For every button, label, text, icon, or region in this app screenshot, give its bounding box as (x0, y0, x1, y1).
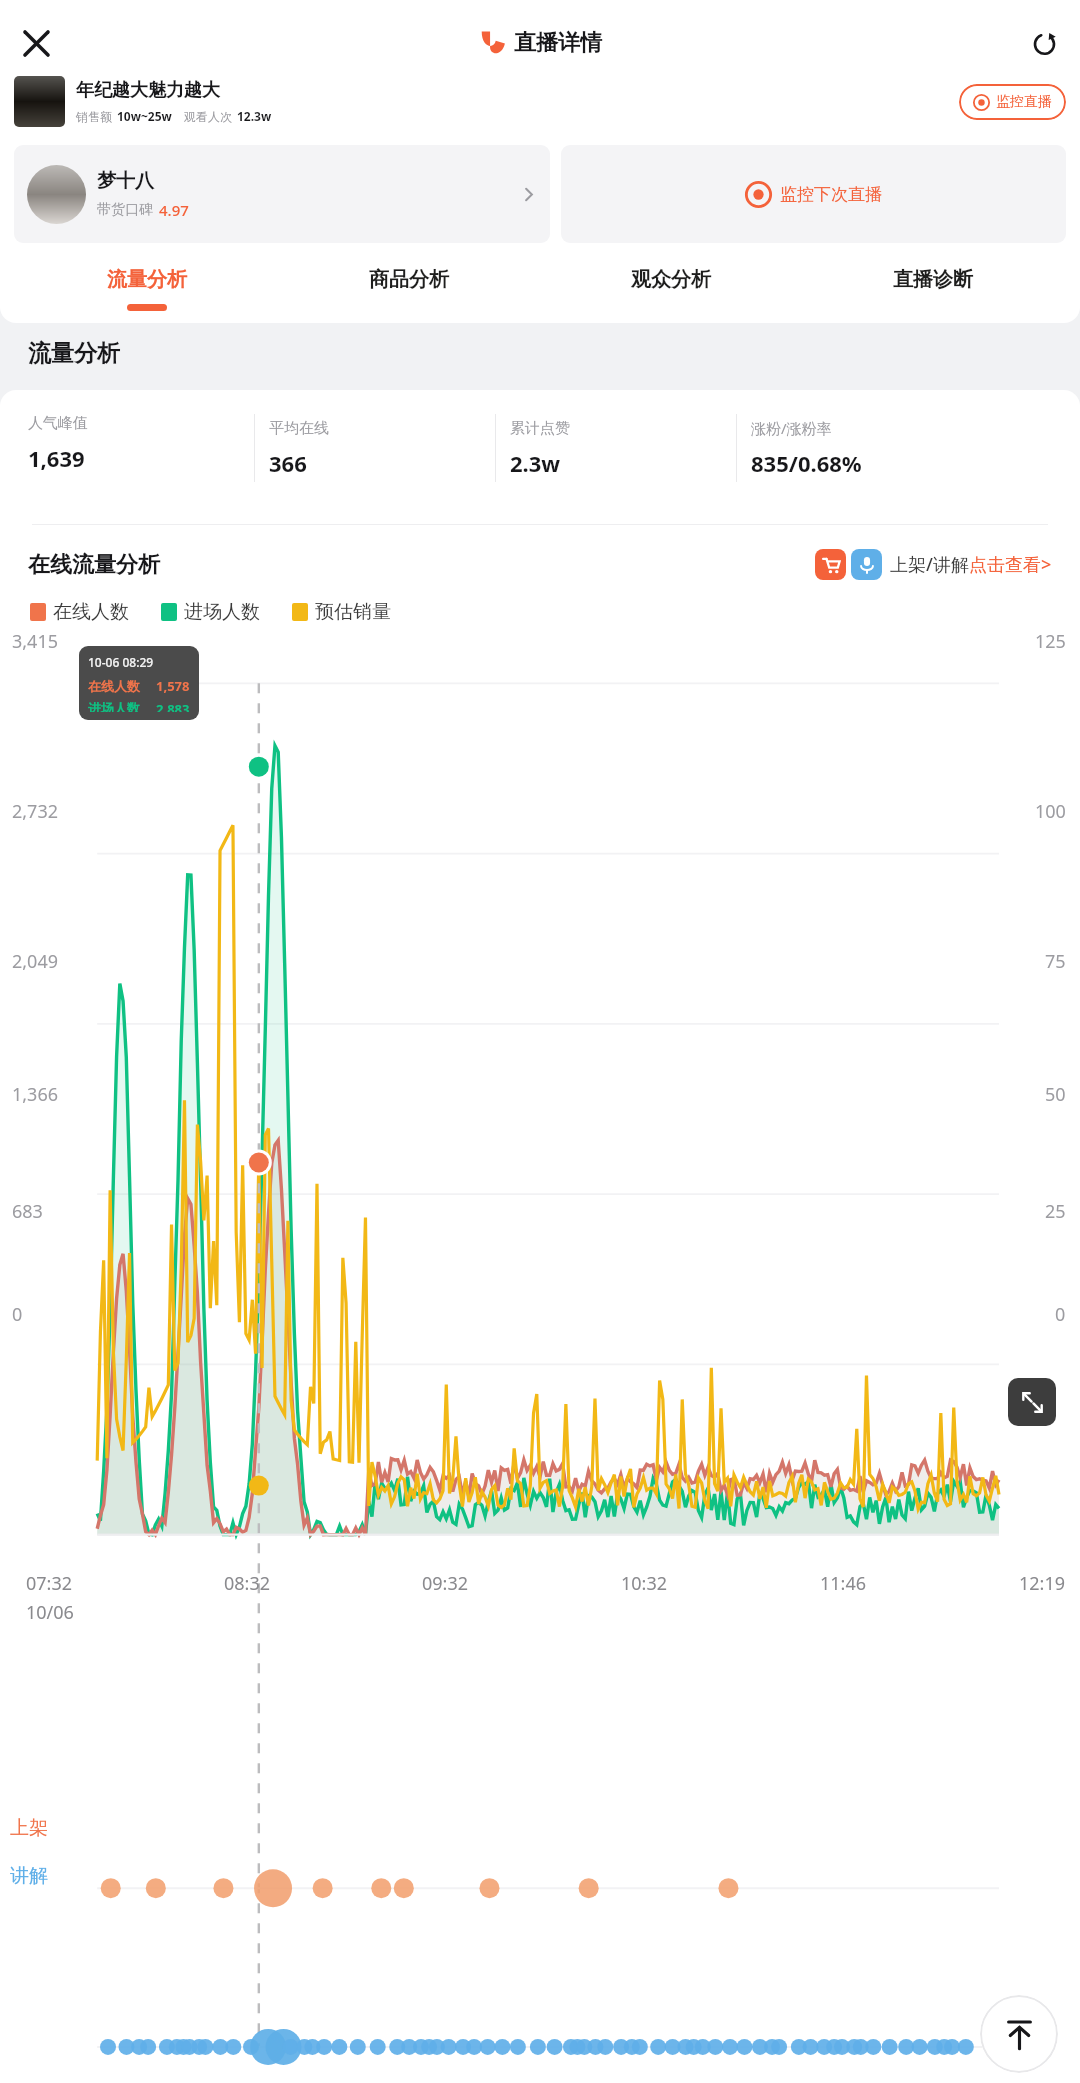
staticText: 125 (1035, 629, 1066, 654)
staticText: 商品分析 (369, 267, 449, 292)
button[interactable]: 流量分析 (16, 267, 278, 311)
staticText: 梦十八 (97, 169, 154, 193)
staticText: 监控下次直播 (780, 184, 882, 205)
staticText: 流量分析 (107, 267, 187, 292)
staticText: 10-06 08:29 (88, 654, 154, 670)
staticText: 2,883 (156, 700, 190, 712)
button[interactable]: 进场人数 (161, 600, 260, 624)
staticText: 2,732 (12, 799, 59, 824)
staticText: 涨粉/涨粉率 (751, 418, 832, 438)
staticText: 上架 (10, 1816, 48, 1840)
staticText: 4.97 (159, 200, 189, 220)
staticText: 2,049 (12, 949, 59, 974)
button[interactable]: 监控下次直播 (561, 145, 1066, 243)
staticText: 人气峰值 (28, 414, 88, 433)
staticText: 835/0.68% (751, 448, 862, 478)
staticText: 累计点赞 (510, 419, 570, 438)
staticText: 点击查看> (969, 552, 1052, 577)
button[interactable]: Scroll to top (980, 1995, 1058, 2073)
button[interactable]: Refresh (1020, 19, 1068, 67)
button[interactable]: 预估销量 (292, 600, 391, 624)
staticText: 12:19 (1019, 1571, 1066, 1596)
staticText: 09:32 (422, 1571, 469, 1596)
staticText: 25 (1045, 1199, 1066, 1224)
staticText: 观看人次 (184, 109, 232, 124)
staticText: 100 (1035, 799, 1066, 824)
button[interactable]: 在线人数 (30, 600, 129, 624)
staticText: 08:32 (224, 1571, 271, 1596)
button[interactable]: 直播诊断 (802, 267, 1064, 311)
staticText: 监控直播 (996, 93, 1052, 111)
staticText: 10/06 (26, 1600, 74, 1625)
button[interactable]: 监控直播 (959, 84, 1066, 120)
staticText: 1,639 (28, 443, 85, 473)
staticText: 10w~25w (117, 108, 172, 124)
staticText: 1,366 (12, 1082, 59, 1107)
staticText: 销售额 (76, 109, 112, 124)
staticText: 直播详情 (514, 29, 602, 57)
staticText: 在线人数 (53, 600, 129, 624)
staticText: 10:32 (621, 1571, 668, 1596)
staticText: 12.3w (237, 108, 272, 124)
staticText: 进场人数 (88, 700, 140, 712)
staticText: 1,578 (156, 677, 190, 695)
button[interactable]: 观众分析 (540, 267, 802, 311)
staticText: 50 (1045, 1082, 1066, 1107)
staticText: 预估销量 (315, 600, 391, 624)
staticText: 2.3w (510, 448, 561, 478)
staticText: 683 (12, 1199, 43, 1224)
staticText: 3,415 (12, 629, 59, 654)
staticText: 07:32 (26, 1571, 73, 1596)
button[interactable]: 梦十八 (14, 145, 550, 243)
staticText: 观众分析 (631, 267, 711, 292)
staticText: 在线人数 (88, 678, 140, 694)
button[interactable]: Close (10, 17, 62, 69)
staticText: 11:46 (820, 1571, 867, 1596)
button[interactable]: Expand chart (1008, 1378, 1056, 1426)
button[interactable]: 商品分析 (278, 267, 540, 311)
staticText: 年纪越大魅力越大 (76, 79, 220, 102)
staticText: 在线流量分析 (28, 551, 160, 579)
button[interactable]: 上架/讲解 (815, 549, 1052, 580)
staticText: 0 (12, 1302, 23, 1327)
staticText: 366 (269, 448, 307, 478)
staticText: 直播诊断 (893, 267, 973, 292)
staticText: 讲解 (10, 1864, 48, 1888)
staticText: 平均在线 (269, 419, 329, 438)
staticText: 0 (1055, 1302, 1066, 1327)
staticText: 进场人数 (184, 600, 260, 624)
staticText: 带货口碑 (97, 201, 153, 219)
staticText: 流量分析 (28, 339, 120, 368)
staticText: 上架/讲解 (890, 552, 969, 577)
staticText: 75 (1045, 949, 1066, 974)
